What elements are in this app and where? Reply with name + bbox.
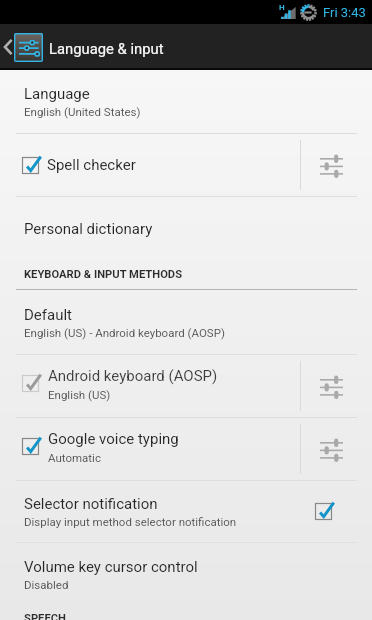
- staticText: SPEECH: [24, 612, 66, 620]
- button[interactable]: [0, 418, 300, 480]
- staticText: Personal dictionary: [24, 220, 153, 238]
- staticText: Default: [24, 306, 72, 324]
- button[interactable]: [0, 543, 372, 605]
- button[interactable]: Input method settings: [300, 134, 372, 196]
- button[interactable]: Navigate up: [0, 24, 43, 70]
- staticText: English (United States): [24, 105, 141, 118]
- staticText: Selector notification: [24, 495, 158, 513]
- staticText: Volume key cursor control: [24, 558, 198, 576]
- staticText: Spell checker: [47, 156, 136, 174]
- button[interactable]: Selector notification toggle: [315, 502, 334, 520]
- button[interactable]: Input method settings: [300, 355, 372, 417]
- staticText: Google voice typing: [48, 430, 179, 448]
- staticText: H: [279, 3, 285, 12]
- button[interactable]: [0, 355, 300, 417]
- staticText: Language: [24, 85, 90, 103]
- button[interactable]: [0, 70, 372, 133]
- staticText: Automatic: [48, 451, 101, 464]
- button[interactable]: [0, 481, 372, 542]
- staticText: Disabled: [24, 578, 69, 591]
- staticText: English (US): [48, 388, 111, 401]
- staticText: Display input method selector notificati…: [24, 515, 237, 528]
- button[interactable]: Spell checker: [0, 134, 300, 196]
- button[interactable]: [0, 197, 372, 289]
- staticText: Android keyboard (AOSP): [48, 367, 218, 385]
- button[interactable]: [0, 290, 372, 354]
- button[interactable]: Input method settings: [300, 418, 372, 480]
- staticText: English (US) - Android keyboard (AOSP): [24, 326, 225, 339]
- staticText: Fri 3:43: [323, 5, 366, 20]
- staticText: Language & input: [49, 40, 164, 57]
- staticText: KEYBOARD & INPUT METHODS: [24, 268, 183, 281]
